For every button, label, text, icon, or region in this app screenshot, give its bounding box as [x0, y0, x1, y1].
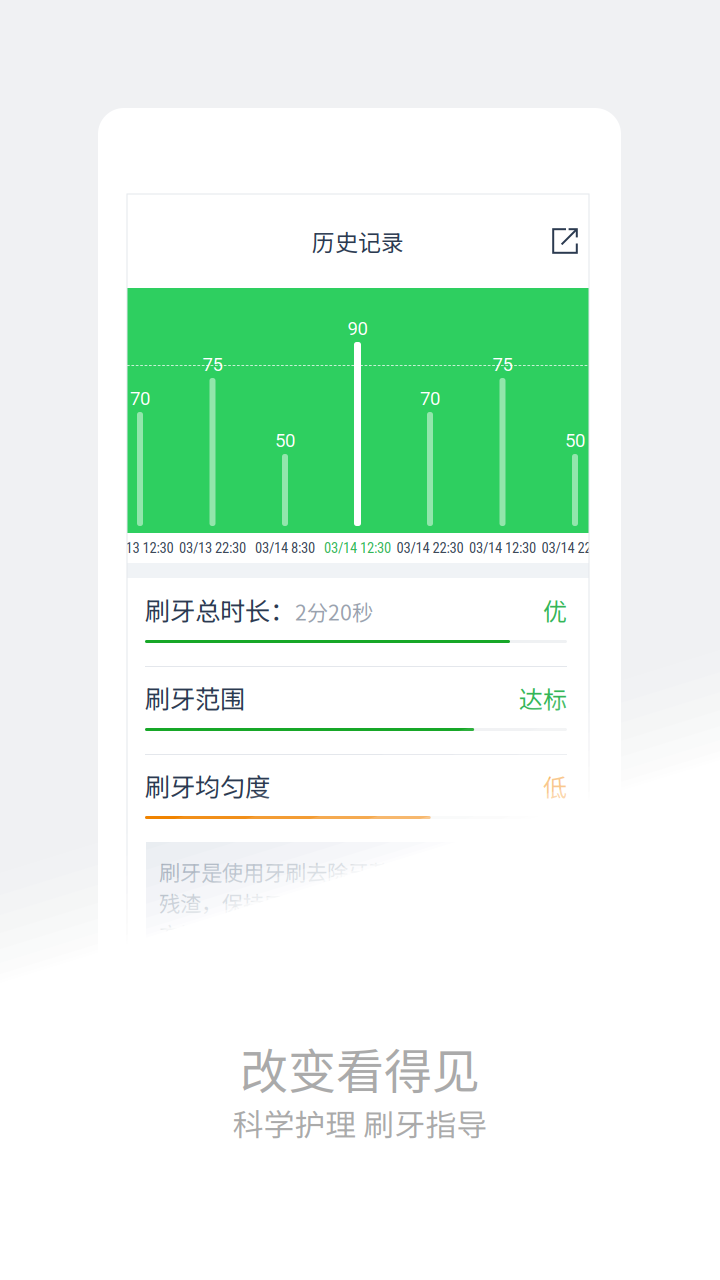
button[interactable]: 刷牙范围: [127, 666, 589, 754]
button[interactable]: 刷牙总时长：: [127, 578, 589, 666]
staticText: 03/14 12:30: [324, 539, 391, 557]
staticText: 03/14 22:30: [541, 539, 608, 557]
staticText: 改变看得见: [240, 1033, 480, 1103]
staticText: 优: [543, 593, 567, 627]
staticText: 03/14 22:30: [396, 539, 463, 557]
staticText: 刷牙是使用牙刷去除牙菌斑、软垢和食物残渣，保持口腔清洁的重要自我口腔保健方法，应…: [159, 856, 537, 980]
button[interactable]: 分享: [541, 217, 589, 265]
staticText: 历史记录: [312, 225, 404, 257]
staticText: 刷牙总时长：: [145, 591, 295, 628]
staticText: 刷牙范围: [145, 679, 245, 716]
staticText: 75: [492, 354, 512, 375]
staticText: 科学护理 刷牙指导: [232, 1101, 487, 1145]
staticText: 03/13 12:30: [106, 539, 173, 557]
staticText: 90: [347, 318, 367, 339]
staticText: 达标: [519, 681, 567, 715]
staticText: 50: [565, 430, 585, 451]
staticText: 低: [543, 769, 567, 803]
staticText: 03/13 22:30: [179, 539, 246, 557]
staticText: 75: [202, 354, 222, 375]
staticText: 03/14 8:30: [255, 539, 315, 557]
button[interactable]: 刷牙均匀度: [127, 754, 589, 842]
staticText: 70: [130, 388, 150, 409]
staticText: 70: [420, 388, 440, 409]
staticText: 刷牙均匀度: [145, 767, 270, 804]
staticText: 50: [275, 430, 295, 451]
staticText: 03/14 12:30: [469, 539, 536, 557]
staticText: 2分20秒: [295, 596, 373, 627]
